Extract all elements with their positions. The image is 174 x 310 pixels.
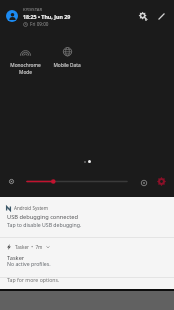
staticText: Tasker • 7m bbox=[15, 244, 43, 250]
button[interactable]: Brightness level bbox=[5, 175, 18, 188]
staticText: Tasker bbox=[7, 254, 25, 262]
button[interactable]: Edit bbox=[154, 9, 169, 24]
staticText: Tap for more options. bbox=[7, 276, 60, 283]
button[interactable]: Mobile Data bbox=[46, 44, 88, 69]
button[interactable]: Tap for more options. bbox=[0, 278, 174, 289]
staticText: KYIVSTAR bbox=[23, 7, 43, 13]
button[interactable]: Tasker • 7m bbox=[0, 238, 174, 277]
button[interactable]: Monochrome Mode bbox=[4, 44, 46, 76]
button[interactable]: Settings bbox=[136, 9, 151, 24]
staticText: Fri 09:00 bbox=[30, 21, 49, 27]
button[interactable]: Auto brightness bbox=[137, 176, 150, 189]
button[interactable]: Android System bbox=[0, 197, 174, 237]
staticText: Android System bbox=[14, 205, 48, 211]
button[interactable]: User avatar bbox=[6, 10, 18, 22]
staticText: Mobile Data bbox=[53, 62, 81, 69]
staticText: Tap to disable USB debugging. bbox=[7, 221, 82, 228]
staticText: USB debugging connected bbox=[7, 213, 79, 221]
button[interactable]: Brightness bbox=[26, 176, 128, 187]
staticText: No active profiles. bbox=[7, 260, 51, 267]
button[interactable]: Open settings bbox=[155, 175, 168, 188]
staticText: Monochrome Mode bbox=[10, 62, 41, 76]
staticText: 18:25 • Thu, Jun 29 bbox=[23, 13, 71, 20]
